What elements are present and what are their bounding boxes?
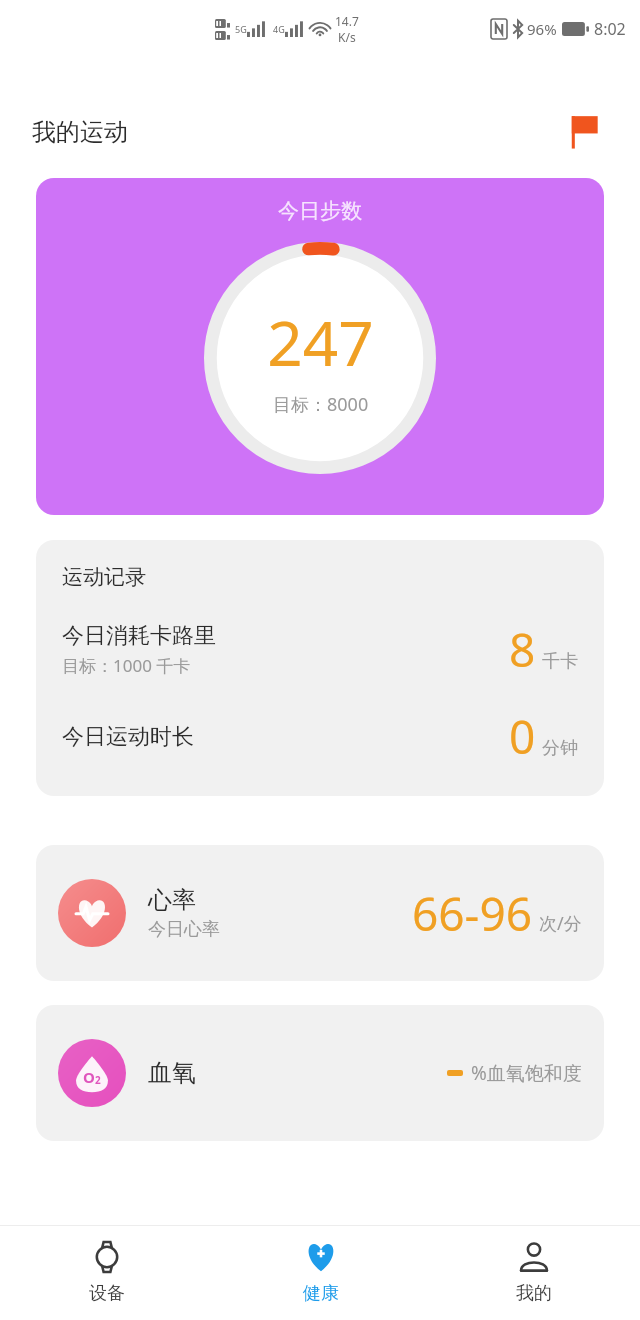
- button[interactable]: 健康: [214, 1226, 427, 1320]
- button[interactable]: Goal: [564, 112, 604, 152]
- staticText: 今日消耗卡路里: [62, 622, 216, 650]
- staticText: 247: [267, 300, 374, 384]
- staticText: %血氧饱和度: [471, 1060, 582, 1086]
- staticText: 66-96: [412, 882, 533, 945]
- staticText: 我的运动: [32, 117, 128, 147]
- staticText: 目标：8000: [273, 392, 369, 417]
- staticText: 96%: [527, 19, 557, 39]
- staticText: 我的: [516, 1282, 552, 1305]
- staticText: 4G: [273, 23, 285, 35]
- staticText: K/s: [338, 29, 356, 45]
- staticText: O: [83, 1067, 95, 1087]
- staticText: 千卡: [542, 650, 578, 673]
- staticText: 健康: [303, 1282, 339, 1305]
- staticText: 目标：1000 千卡: [62, 654, 191, 677]
- staticText: 次/分: [539, 911, 582, 936]
- button[interactable]: O: [36, 1005, 604, 1141]
- staticText: 今日心率: [148, 918, 220, 941]
- staticText: 2: [95, 1073, 101, 1087]
- staticText: 0: [509, 705, 536, 768]
- staticText: 8: [509, 618, 536, 681]
- staticText: 14.7: [335, 13, 359, 29]
- staticText: 今日运动时长: [62, 723, 194, 751]
- staticText: 今日步数: [278, 198, 362, 224]
- staticText: 8:02: [594, 18, 626, 40]
- button[interactable]: 设备: [0, 1226, 214, 1320]
- button[interactable]: 心率: [36, 845, 604, 981]
- staticText: 血氧: [148, 1058, 196, 1088]
- staticText: 分钟: [542, 737, 578, 760]
- staticText: 运动记录: [62, 564, 146, 590]
- staticText: 心率: [148, 885, 196, 915]
- button[interactable]: 今日步数: [36, 178, 604, 515]
- staticText: 5G: [235, 23, 247, 35]
- staticText: 设备: [89, 1282, 125, 1305]
- button[interactable]: 我的: [427, 1226, 640, 1320]
- button[interactable]: 运动记录: [36, 540, 604, 796]
